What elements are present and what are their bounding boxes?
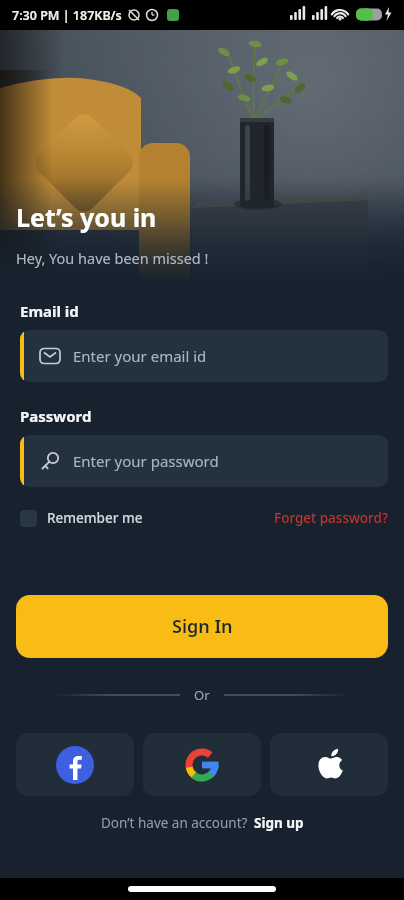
- button[interactable]: Forget password?: [274, 509, 388, 527]
- staticText: Password: [20, 406, 92, 426]
- button[interactable]: Enter your email id: [20, 330, 388, 382]
- button[interactable]: [270, 733, 388, 796]
- staticText: Remember me: [47, 509, 143, 527]
- button[interactable]: Sign In: [16, 595, 388, 658]
- staticText: 7:30 PM | 187KB/s: [12, 7, 122, 24]
- button[interactable]: [16, 733, 134, 796]
- staticText: Hey, You have been missed !: [16, 248, 209, 268]
- staticText: Sign In: [172, 614, 233, 639]
- button[interactable]: [143, 733, 261, 796]
- button[interactable]: Sign up: [254, 814, 304, 832]
- staticText: Enter your password: [73, 451, 219, 471]
- button[interactable]: Enter your password: [20, 435, 388, 487]
- staticText: Let’s you in: [16, 200, 157, 234]
- staticText: Enter your email id: [73, 346, 207, 366]
- button[interactable]: Remember me: [20, 509, 143, 527]
- staticText: Don’t have an account?: [101, 814, 248, 832]
- staticText: Or: [194, 686, 210, 704]
- staticText: Email id: [20, 301, 79, 321]
